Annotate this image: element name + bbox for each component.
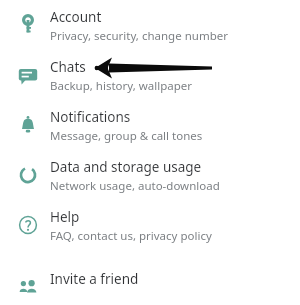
staticText: Help bbox=[50, 208, 80, 226]
button[interactable]: Help bbox=[0, 194, 300, 244]
other: Chats bbox=[12, 58, 44, 92]
button[interactable]: Account bbox=[0, 0, 300, 44]
other: Account bbox=[12, 8, 44, 42]
button[interactable]: Data and storage usage bbox=[0, 144, 300, 194]
staticText: Data and storage usage bbox=[50, 158, 202, 176]
staticText: Account bbox=[50, 8, 102, 26]
staticText: Network usage, auto-download bbox=[50, 178, 220, 194]
button[interactable]: Notifications bbox=[0, 94, 300, 144]
other: Data and storage usage bbox=[12, 158, 44, 192]
staticText: FAQ, contact us, privacy policy bbox=[50, 228, 212, 244]
other: Invite a friend bbox=[12, 270, 44, 304]
button[interactable]: Invite a friend bbox=[0, 244, 300, 304]
staticText: Privacy, security, change number bbox=[50, 28, 228, 44]
staticText: Chats bbox=[50, 58, 86, 76]
other: Notifications bbox=[12, 108, 44, 142]
staticText: Invite a friend bbox=[50, 270, 139, 288]
button[interactable]: Chats bbox=[0, 44, 300, 94]
staticText: Notifications bbox=[50, 108, 131, 126]
staticText: Backup, history, wallpaper bbox=[50, 78, 193, 94]
other: Help bbox=[12, 208, 44, 242]
staticText: Message, group & call tones bbox=[50, 128, 203, 144]
